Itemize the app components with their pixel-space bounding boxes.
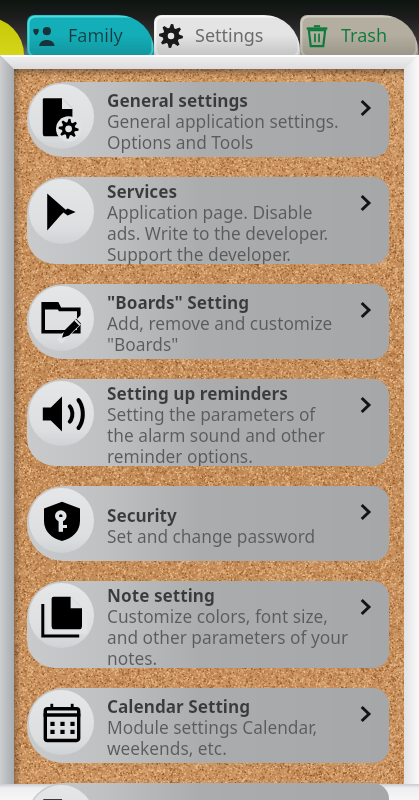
staticText: "Boards" Setting Add, remove and customi… xyxy=(107,293,333,356)
button[interactable]: Notes tab xyxy=(0,17,24,55)
button[interactable]: "Boards" Setting Add, remove and customi… xyxy=(27,284,389,359)
staticText: General settings General application set… xyxy=(107,91,339,154)
button[interactable]: Settings xyxy=(154,15,300,55)
button[interactable]: Family xyxy=(27,15,154,55)
button[interactable]: General settings General application set… xyxy=(27,82,389,157)
staticText: Setting up reminders Setting the paramet… xyxy=(107,384,325,466)
button[interactable]: Services Application page. Disable ads. … xyxy=(27,177,389,264)
staticText: Security Set and change password xyxy=(107,506,316,548)
button[interactable]: Calendar Setting Module settings Calenda… xyxy=(27,688,389,763)
button[interactable]: Note setting Customize colors, font size… xyxy=(27,581,389,668)
button[interactable]: Setting up reminders Setting the paramet… xyxy=(27,379,389,466)
staticText: Trash xyxy=(341,23,388,48)
button[interactable]: Security Set and change password xyxy=(27,486,389,561)
staticText: Services Application page. Disable ads. … xyxy=(107,182,329,264)
staticText: Calendar Setting Module settings Calenda… xyxy=(107,697,318,760)
button[interactable]: Trash xyxy=(300,15,418,55)
button[interactable]: Widget settings Widget parameters xyxy=(27,783,389,800)
staticText: Note setting Customize colors, font size… xyxy=(107,586,349,668)
staticText: Family xyxy=(68,23,123,48)
staticText: Settings xyxy=(195,23,264,48)
